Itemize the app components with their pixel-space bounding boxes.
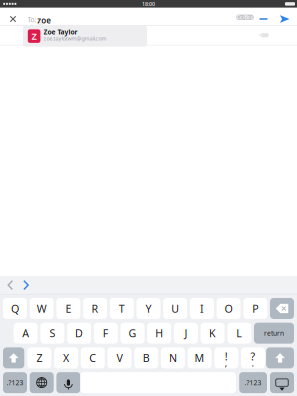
button[interactable]: R [83, 298, 107, 319]
staticText: Z [32, 30, 37, 42]
button[interactable]: G [120, 323, 144, 344]
staticText: D [75, 326, 83, 340]
staticText: zoe [37, 15, 51, 26]
staticText: M [195, 351, 205, 365]
staticText: I [200, 301, 204, 316]
button[interactable]: E [56, 298, 80, 319]
button[interactable]: O [217, 298, 241, 319]
button[interactable]: S [40, 323, 64, 344]
button[interactable]: F [94, 323, 118, 344]
staticText: S [49, 326, 55, 340]
button[interactable]: Dictate [56, 372, 80, 393]
button[interactable]: Cancel [3, 10, 23, 27]
staticText: C [89, 351, 96, 365]
button[interactable]: B [134, 347, 158, 368]
staticText: O [225, 301, 233, 316]
button[interactable]: C [81, 347, 105, 368]
staticText: .?123 [6, 378, 23, 387]
button[interactable]: A [14, 323, 38, 344]
staticText: .?123 [245, 378, 262, 387]
button[interactable]: Z [23, 25, 147, 47]
staticText: X [63, 351, 69, 365]
staticText: F [103, 326, 109, 340]
staticText: H [155, 326, 163, 340]
staticText: A [22, 326, 29, 340]
staticText: Zoe Taylor [44, 27, 78, 36]
button[interactable]: M [188, 347, 212, 368]
button[interactable]: Q [3, 298, 27, 319]
button[interactable]: Cc/Bcc [236, 15, 254, 20]
staticText: L [236, 326, 242, 340]
button[interactable]: Previous [2, 277, 18, 294]
button[interactable]: Y [136, 298, 160, 319]
button[interactable]: Hide keyboard [270, 372, 294, 393]
button[interactable]: H [147, 323, 171, 344]
staticText: , [225, 357, 228, 369]
staticText: . [251, 357, 254, 369]
staticText: K [209, 326, 216, 340]
staticText: To: [28, 15, 37, 24]
button[interactable]: Next keyboard [30, 372, 54, 393]
staticText: return [264, 329, 284, 338]
button[interactable]: V [107, 347, 131, 368]
staticText: J [184, 326, 187, 340]
staticText: B [143, 351, 150, 365]
staticText: W [37, 301, 47, 316]
button[interactable]: D [67, 323, 91, 344]
button[interactable]: return [254, 323, 294, 344]
button[interactable]: K [201, 323, 225, 344]
staticText: U [171, 301, 179, 316]
button[interactable]: Shift [266, 347, 294, 368]
button[interactable]: .?123 [239, 372, 267, 393]
button[interactable]: U [163, 298, 187, 319]
button[interactable]: T [110, 298, 134, 319]
button[interactable]: .?123 [3, 372, 27, 393]
button[interactable]: P [243, 298, 267, 319]
button[interactable]: J [174, 323, 198, 344]
staticText: R [92, 301, 99, 316]
staticText: zoe.taylor.wm@gmail.com [44, 35, 107, 42]
staticText: G [128, 326, 136, 340]
staticText: 18:00 [142, 0, 155, 8]
staticText: Z [36, 351, 42, 365]
staticText: Q [11, 301, 19, 316]
button[interactable]: Z [27, 347, 51, 368]
button[interactable]: L [227, 323, 251, 344]
staticText: T [119, 301, 125, 316]
button[interactable]: W [30, 298, 54, 319]
button[interactable]: N [161, 347, 185, 368]
button[interactable]: ? [241, 347, 265, 368]
staticText: N [169, 351, 177, 365]
button[interactable]: Minimize [254, 10, 272, 27]
button[interactable]: X [54, 347, 78, 368]
staticText: V [116, 351, 122, 365]
staticText: E [65, 301, 71, 316]
staticText: Cc/Bcc [236, 14, 253, 21]
button[interactable]: Send [275, 10, 293, 27]
button[interactable]: I [190, 298, 214, 319]
button[interactable]: Next [18, 277, 34, 294]
staticText: ? [250, 349, 255, 363]
button[interactable]: ! [214, 347, 238, 368]
staticText: Y [145, 301, 151, 316]
button[interactable]: Shift [3, 347, 24, 368]
staticText: P [252, 301, 258, 316]
button[interactable]: Delete [270, 298, 294, 319]
staticText: ! [225, 349, 228, 363]
